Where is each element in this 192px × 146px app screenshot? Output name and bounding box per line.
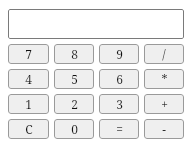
staticText: 1 (25, 96, 32, 112)
button[interactable]: 8 (54, 44, 94, 64)
staticText: 6 (116, 71, 123, 87)
button[interactable]: 0 (54, 119, 94, 139)
button[interactable]: * (144, 69, 184, 89)
button[interactable]: Display (8, 9, 184, 39)
button[interactable]: 4 (8, 69, 49, 89)
staticText: C (25, 121, 33, 137)
staticText: / (162, 46, 166, 62)
button[interactable]: 9 (99, 44, 139, 64)
button[interactable]: 5 (54, 69, 94, 89)
button[interactable]: 1 (8, 94, 49, 114)
staticText: 5 (71, 71, 78, 87)
staticText: * (161, 71, 168, 87)
staticText: 3 (116, 96, 123, 112)
button[interactable]: / (144, 44, 184, 64)
button[interactable]: + (144, 94, 184, 114)
staticText: 0 (71, 121, 78, 137)
staticText: 7 (25, 46, 32, 62)
staticText: + (161, 96, 168, 112)
button[interactable]: 7 (8, 44, 49, 64)
button[interactable]: 2 (54, 94, 94, 114)
staticText: - (162, 121, 166, 137)
staticText: 8 (71, 46, 78, 62)
button[interactable]: 3 (99, 94, 139, 114)
button[interactable]: 6 (99, 69, 139, 89)
staticText: = (116, 121, 123, 137)
button[interactable]: C (8, 119, 49, 139)
button[interactable]: - (144, 119, 184, 139)
staticText: 9 (116, 46, 123, 62)
button[interactable]: = (99, 119, 139, 139)
staticText: 4 (25, 71, 32, 87)
staticText: 2 (71, 96, 78, 112)
